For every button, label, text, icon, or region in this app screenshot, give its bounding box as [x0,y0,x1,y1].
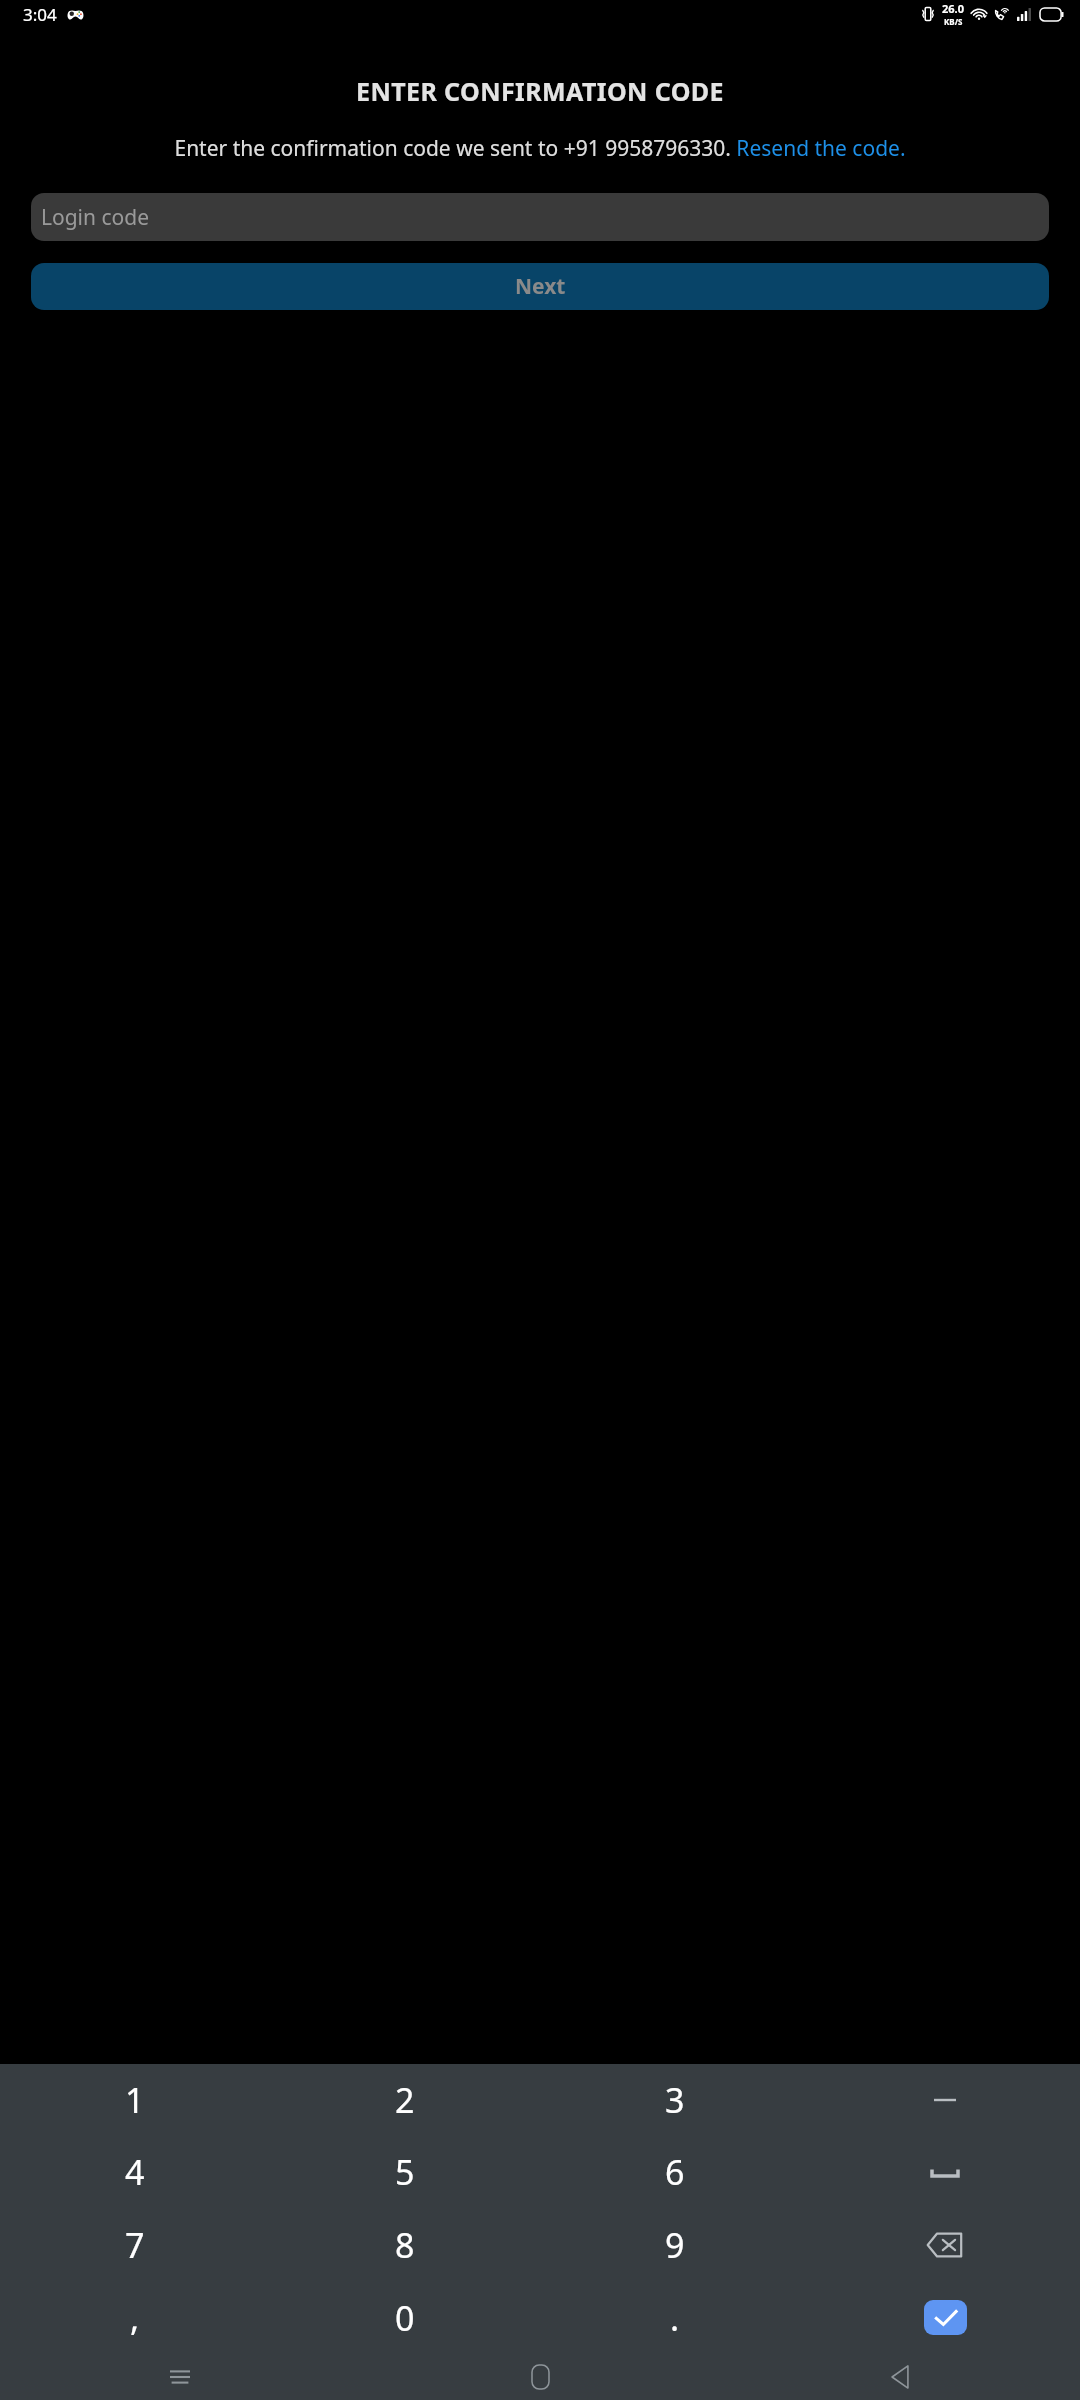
staticText: 7 [125,2222,145,2268]
button[interactable]: Next [31,263,1049,310]
button[interactable]: 4 [0,2136,270,2208]
staticText: 5 [395,2149,415,2195]
staticText: 3:04 [23,3,57,26]
staticText: 4 [125,2149,145,2195]
staticText: 6 [665,2149,685,2195]
button[interactable]: Space [810,2136,1080,2208]
staticText: KB/S [944,16,963,27]
button[interactable]: Dash [810,2064,1080,2136]
button[interactable]: . [540,2281,810,2354]
staticText: ENTER CONFIRMATION CODE [0,74,1080,108]
button[interactable]: 1 [0,2064,270,2136]
button[interactable]: 8 [270,2208,540,2281]
staticText: Next [515,272,566,301]
button[interactable]: 0 [270,2281,540,2354]
staticText: Enter the confirmation code we sent to +… [22,134,1058,163]
button[interactable]: 6 [540,2136,810,2208]
button[interactable]: 3 [540,2064,810,2136]
button[interactable]: 9 [540,2208,810,2281]
button[interactable]: , [0,2281,270,2354]
staticText: 1 [125,2077,145,2123]
staticText: 2 [395,2077,415,2123]
button[interactable]: Recent apps [0,2354,360,2400]
staticText: 8 [395,2222,415,2268]
button[interactable]: Login code [31,193,1049,241]
staticText: 3 [665,2077,685,2123]
button[interactable]: Home [360,2354,720,2400]
button[interactable]: Enter [810,2281,1080,2354]
button[interactable]: Backspace [810,2208,1080,2281]
staticText: 0 [395,2295,415,2341]
staticText: , [130,2295,140,2341]
button[interactable]: 2 [270,2064,540,2136]
button[interactable]: 7 [0,2208,270,2281]
staticText: . [670,2295,680,2341]
button[interactable]: Back [720,2354,1080,2400]
staticText: 26.0 [942,1,964,16]
staticText: Login code [41,203,150,232]
staticText: 9 [665,2222,685,2268]
button[interactable]: 5 [270,2136,540,2208]
